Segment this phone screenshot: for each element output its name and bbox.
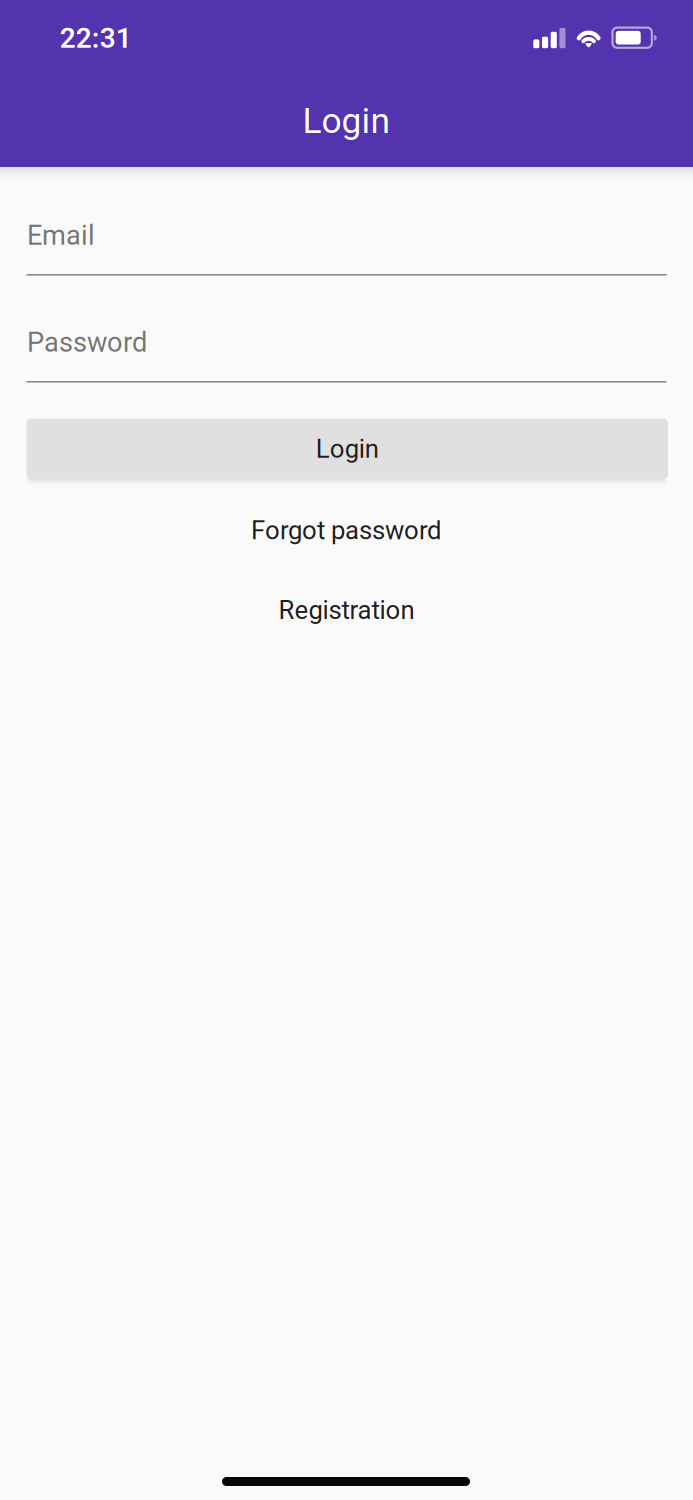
staticText: Login [316, 434, 379, 464]
staticText: Password [27, 326, 147, 358]
staticText: Forgot password [251, 515, 442, 545]
staticText: Registration [278, 595, 414, 625]
button[interactable]: Login [26, 418, 668, 479]
button[interactable]: Email [26, 219, 666, 288]
staticText: 22:31 [60, 22, 132, 54]
button[interactable]: Forgot password [0, 516, 693, 545]
staticText: Email [27, 219, 95, 251]
staticText: Login [302, 100, 390, 142]
button[interactable]: Registration [0, 596, 693, 625]
button[interactable]: Password [26, 326, 666, 395]
